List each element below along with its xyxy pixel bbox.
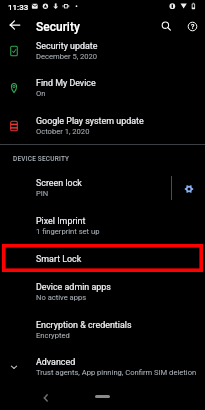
staticText: Device admin apps <box>36 282 111 292</box>
staticText: DEVICE SECURITY <box>13 155 70 163</box>
button[interactable]: Security update <box>0 39 205 63</box>
staticText: Security <box>36 20 80 34</box>
button[interactable]: Encryption & credentials <box>0 318 205 342</box>
button[interactable]: Search <box>155 15 178 38</box>
staticText: On <box>36 89 46 98</box>
button[interactable]: Home <box>95 395 110 398</box>
button[interactable]: Back <box>3 13 27 37</box>
staticText: PIN <box>36 189 49 198</box>
staticText: October 1, 2020 <box>36 127 90 136</box>
staticText: Advanced <box>36 357 76 367</box>
staticText: 11:33 <box>8 3 29 12</box>
staticText: Encrypted <box>36 331 70 340</box>
staticText: Encryption & credentials <box>36 320 132 330</box>
button[interactable]: Find My Device <box>0 76 205 100</box>
staticText: Google Play system update <box>36 116 144 126</box>
staticText: 1 fingerprint set up <box>36 227 100 236</box>
button[interactable]: Help <box>181 15 204 38</box>
button[interactable]: Screen lock <box>0 176 205 200</box>
staticText: Trust agents, App pinning, Confirm SIM d… <box>36 368 197 377</box>
button[interactable]: Screen lock settings <box>178 178 199 199</box>
staticText: No active apps <box>36 293 87 302</box>
button[interactable]: Smart Lock <box>0 249 205 268</box>
staticText: Smart Lock <box>36 254 82 264</box>
staticText: ? <box>191 23 195 31</box>
button[interactable]: Advanced <box>0 355 205 379</box>
staticText: Security update <box>36 41 98 51</box>
button[interactable]: Back <box>36 388 54 406</box>
button[interactable]: Device admin apps <box>0 280 205 304</box>
staticText: Screen lock <box>36 178 82 188</box>
staticText: Pixel Imprint <box>36 216 86 226</box>
button[interactable]: Pixel Imprint <box>0 214 205 238</box>
staticText: December 5, 2020 <box>36 52 98 61</box>
staticText: Find My Device <box>36 78 96 88</box>
button[interactable]: Google Play system update <box>0 114 205 138</box>
